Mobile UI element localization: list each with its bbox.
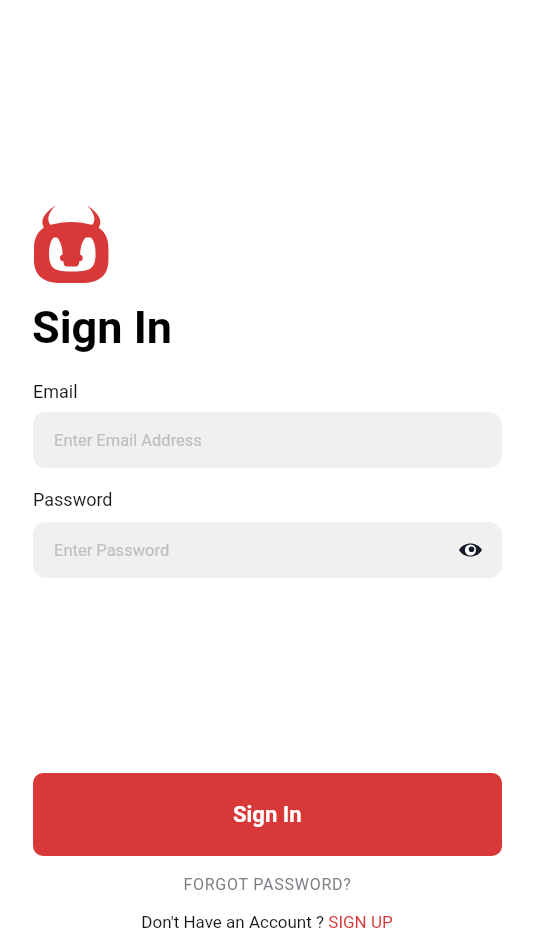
button[interactable]: Show password xyxy=(459,543,482,557)
button[interactable]: Enter Email Address xyxy=(33,412,502,468)
staticText: Email xyxy=(33,381,78,402)
staticText: Don't Have an Account ? SIGN UP xyxy=(141,912,393,932)
button[interactable]: Sign In xyxy=(33,773,502,856)
staticText: Enter Email Address xyxy=(54,431,202,450)
button[interactable]: FORGOT PASSWORD? xyxy=(0,867,534,901)
staticText: FORGOT PASSWORD? xyxy=(183,875,352,894)
staticText: Enter Password xyxy=(54,541,170,560)
staticText: Password xyxy=(33,489,113,510)
staticText: Sign In xyxy=(233,802,302,828)
button[interactable]: Enter Password xyxy=(33,522,502,578)
staticText: Sign In xyxy=(32,301,173,354)
button[interactable]: Don't Have an Account ? SIGN UP xyxy=(0,904,534,940)
